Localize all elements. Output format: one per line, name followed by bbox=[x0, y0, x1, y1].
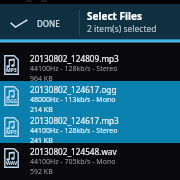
staticText: 48000Hz - 113kb/s - Mono bbox=[30, 95, 116, 105]
staticText: Select Files bbox=[87, 9, 142, 23]
staticText: 592 KB bbox=[30, 167, 53, 177]
staticText: 964 KB bbox=[30, 74, 53, 84]
button[interactable]: MP3 bbox=[0, 112, 180, 143]
staticText: 20130802_124617.ogg bbox=[30, 84, 117, 95]
button[interactable]: OGG bbox=[0, 81, 180, 112]
staticText: OGG bbox=[6, 98, 18, 105]
staticText: 241 KB bbox=[30, 136, 53, 146]
staticText: 20130802_124617.mp3 bbox=[30, 115, 119, 126]
staticText: WAV bbox=[6, 160, 18, 167]
button[interactable]: DONE bbox=[37, 18, 60, 29]
button[interactable]: MP3 bbox=[0, 50, 180, 81]
staticText: 214 KB bbox=[30, 105, 53, 115]
staticText: 2 item(s) selected bbox=[87, 23, 157, 35]
staticText: 20130802_124809.mp3 bbox=[30, 53, 119, 64]
staticText: 44100Hz - 705kb/s - Mono bbox=[30, 157, 116, 167]
staticText: MP3 bbox=[6, 129, 17, 136]
staticText: 44100Hz - 128kb/s - Stereo bbox=[30, 126, 118, 136]
staticText: 20130802_124548.wav bbox=[30, 146, 117, 157]
button[interactable]: WAV bbox=[0, 143, 180, 174]
staticText: 44100Hz - 128kb/s - Stereo bbox=[30, 64, 118, 74]
button[interactable]: Done bbox=[0, 4, 35, 39]
staticText: MP3 bbox=[6, 67, 17, 74]
